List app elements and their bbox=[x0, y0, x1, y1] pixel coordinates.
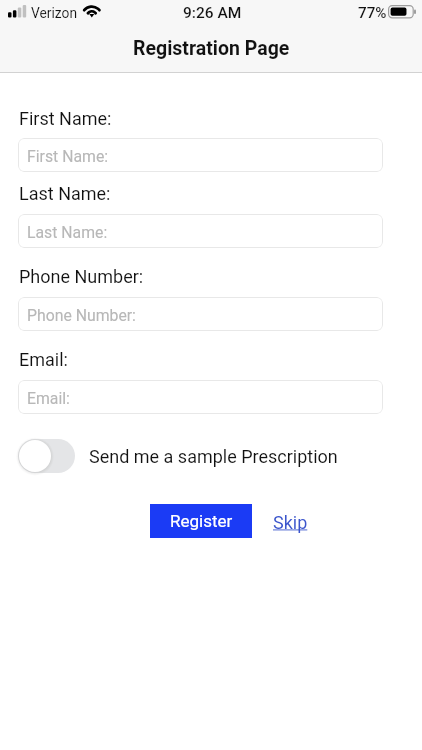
staticText: Phone Number: bbox=[19, 266, 144, 287]
staticText: Last Name: bbox=[27, 223, 108, 242]
staticText: First Name: bbox=[19, 108, 112, 129]
button[interactable]: Send me a sample Prescription bbox=[18, 439, 75, 473]
staticText: Registration Page bbox=[133, 37, 290, 60]
staticText: 9:26 AM bbox=[183, 4, 242, 22]
staticText: Send me a sample Prescription bbox=[89, 446, 338, 467]
staticText: Phone Number: bbox=[27, 306, 136, 325]
staticText: Verizon bbox=[31, 5, 78, 21]
staticText: Email: bbox=[19, 349, 68, 370]
button[interactable]: Last Name: bbox=[18, 214, 383, 248]
button[interactable]: First Name: bbox=[18, 138, 383, 172]
staticText: Skip bbox=[273, 512, 308, 533]
staticText: First Name: bbox=[27, 147, 109, 166]
staticText: Email: bbox=[27, 389, 70, 408]
staticText: Last Name: bbox=[19, 183, 111, 204]
staticText: 77% bbox=[358, 4, 387, 22]
button[interactable]: Email: bbox=[18, 380, 383, 414]
staticText: Register bbox=[170, 511, 233, 531]
button[interactable]: Register bbox=[150, 504, 252, 538]
button[interactable]: Skip bbox=[273, 512, 308, 533]
button[interactable]: Phone Number: bbox=[18, 297, 383, 331]
